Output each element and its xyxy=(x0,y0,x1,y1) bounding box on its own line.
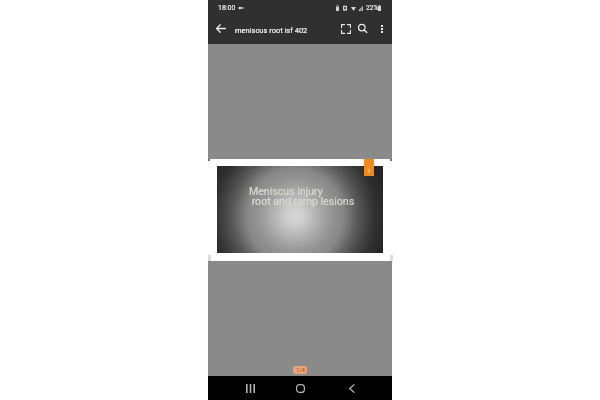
button[interactable]: Meniscus injury root and ramp lesions xyxy=(217,166,383,253)
staticText: 1/4 xyxy=(296,367,305,374)
button[interactable]: Back xyxy=(209,17,232,40)
staticText: 1 xyxy=(367,167,371,174)
staticText: meniscus root isf 402 xyxy=(235,26,308,35)
button[interactable]: Home xyxy=(288,376,312,400)
staticText: 18:00 xyxy=(218,4,236,12)
button[interactable]: Page 1 xyxy=(364,159,374,176)
button[interactable]: Recents xyxy=(238,376,262,400)
button[interactable]: Fullscreen xyxy=(335,18,356,39)
staticText: Meniscus injury root and ramp lesions xyxy=(249,185,355,208)
button[interactable]: Back xyxy=(339,376,363,400)
button[interactable]: Search xyxy=(352,18,373,39)
button[interactable]: More options xyxy=(371,18,392,39)
staticText: 22% xyxy=(366,4,379,12)
button[interactable]: 1/4 xyxy=(293,366,307,374)
